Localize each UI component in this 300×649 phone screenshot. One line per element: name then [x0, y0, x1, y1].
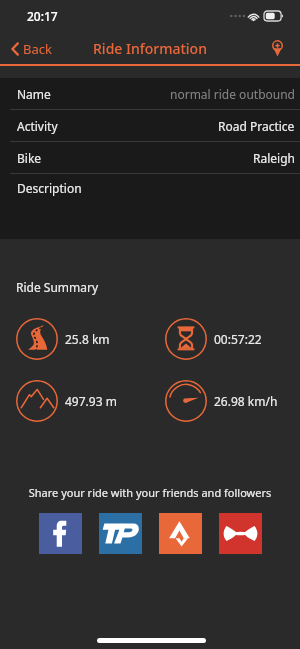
staticText: Activity [17, 118, 58, 134]
button[interactable]: Share on Strava [159, 513, 202, 554]
button[interactable]: Add location [260, 36, 300, 61]
staticText: 26.98 km/h [214, 393, 278, 409]
button[interactable]: 00:57:22 [165, 318, 262, 360]
staticText: Road Practice [218, 118, 295, 134]
staticText: Ride Information [93, 39, 207, 58]
button[interactable]: Share on Under Armour [219, 513, 262, 554]
button[interactable]: 26.98 km/h [165, 380, 278, 422]
button[interactable]: 25.8 km [16, 318, 110, 360]
staticText: Bike [17, 150, 42, 166]
button[interactable]: Activity [0, 110, 300, 141]
staticText: Share your ride with your friends and fo… [0, 485, 300, 500]
staticText: 00:57:22 [214, 331, 262, 347]
button[interactable]: Description [0, 174, 300, 239]
button[interactable]: Back [0, 35, 62, 63]
staticText: Description [17, 180, 82, 196]
staticText: Back [23, 40, 52, 58]
staticText: 25.8 km [65, 331, 110, 347]
button[interactable]: Bike [0, 142, 300, 173]
staticText: 20:17 [27, 8, 58, 24]
button[interactable]: Share on Facebook [39, 513, 82, 554]
button[interactable]: 497.93 m [16, 380, 117, 422]
staticText: 497.93 m [65, 393, 117, 409]
button[interactable]: Share on TrainingPeaks [99, 513, 142, 554]
staticText: Name [17, 86, 51, 102]
staticText: normal ride outbound [170, 86, 295, 102]
button[interactable]: Name [0, 78, 300, 109]
staticText: Ride Summary [16, 279, 99, 295]
staticText: Raleigh [253, 150, 295, 166]
